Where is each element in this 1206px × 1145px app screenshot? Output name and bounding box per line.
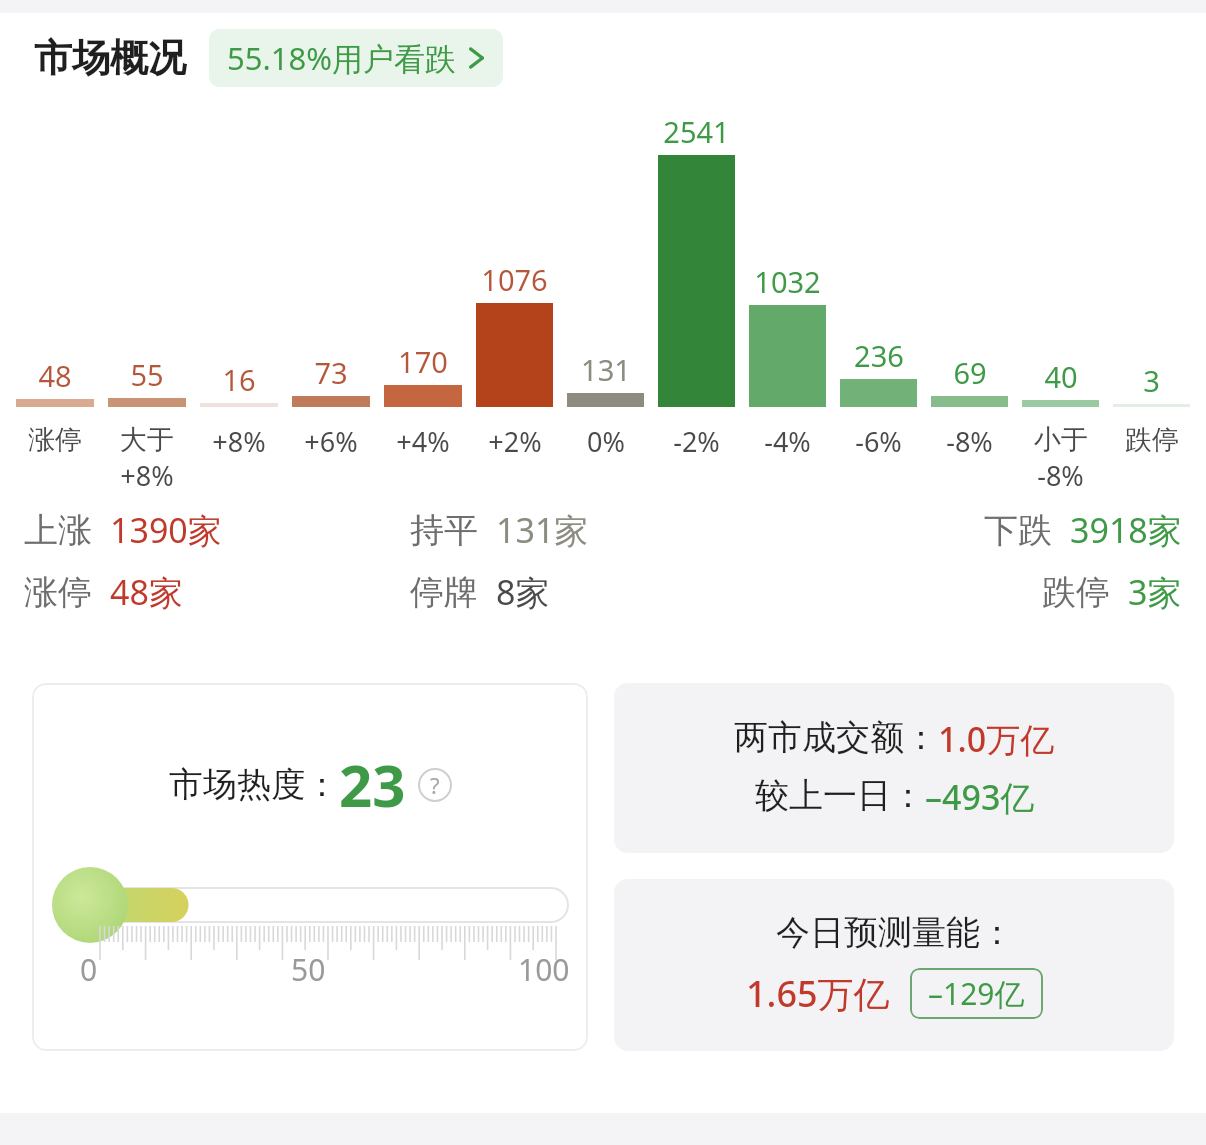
staticText: 170 xyxy=(398,342,448,381)
staticText: -2% xyxy=(673,423,720,460)
staticText: +6% xyxy=(304,423,358,460)
staticText: 16 xyxy=(222,360,256,399)
staticText: 涨停 xyxy=(28,423,82,457)
staticText: 两市成交额： xyxy=(734,716,938,759)
staticText: 大于 xyxy=(120,423,174,457)
staticText: 市场热度： xyxy=(169,763,339,806)
staticText: 0 xyxy=(80,949,98,990)
staticText: 今日预测量能： xyxy=(776,911,1014,954)
staticText: –129亿 xyxy=(928,973,1025,1014)
staticText: 55.18%用户看跌 xyxy=(227,37,456,79)
staticText: +8% xyxy=(120,457,174,491)
staticText: 50 xyxy=(291,949,326,990)
staticText: 较上一日： xyxy=(755,774,925,817)
staticText: 3918家 xyxy=(1070,507,1182,553)
staticText: 跌停 xyxy=(1125,423,1179,457)
staticText: -8% xyxy=(946,423,993,460)
button[interactable]: 两市成交额： xyxy=(614,683,1174,853)
staticText: 131家 xyxy=(496,507,589,553)
staticText: -6% xyxy=(855,423,902,460)
button[interactable]: 55.18%用户看跌 xyxy=(209,29,503,87)
staticText: 48 xyxy=(38,356,72,395)
staticText: 3家 xyxy=(1128,569,1182,615)
staticText: 73 xyxy=(314,353,348,392)
staticText: 8家 xyxy=(496,569,550,615)
staticText: 0% xyxy=(587,423,625,460)
staticText: 1.0万亿 xyxy=(938,716,1055,762)
staticText: +2% xyxy=(488,423,542,460)
staticText: 40 xyxy=(1044,357,1078,396)
button[interactable]: 帮助说明 xyxy=(418,768,452,802)
staticText: 停牌 xyxy=(410,571,478,614)
staticText: 持平 xyxy=(410,509,478,552)
staticText: 下跌 xyxy=(984,509,1052,552)
staticText: 1.65万亿 xyxy=(746,969,890,1018)
staticText: 跌停 xyxy=(1042,571,1110,614)
staticText: 100 xyxy=(518,949,570,990)
staticText: +8% xyxy=(212,423,266,460)
staticText: 1032 xyxy=(754,262,821,301)
staticText: +4% xyxy=(396,423,450,460)
staticText: 小于 xyxy=(1034,423,1088,457)
staticText: -8% xyxy=(1037,457,1084,491)
staticText: 55 xyxy=(130,355,164,394)
staticText: 69 xyxy=(953,353,987,392)
staticText: 1076 xyxy=(481,260,548,299)
staticText: 1390家 xyxy=(110,507,222,553)
staticText: 236 xyxy=(854,336,904,375)
staticText: 3 xyxy=(1143,361,1160,400)
staticText: 48家 xyxy=(110,569,183,615)
staticText: ? xyxy=(430,770,440,800)
staticText: 131 xyxy=(581,350,631,389)
staticText: 上涨 xyxy=(24,509,92,552)
staticText: –493亿 xyxy=(925,774,1035,820)
staticText: 23 xyxy=(339,745,406,824)
staticText: 2541 xyxy=(663,112,730,151)
staticText: 市场概况 xyxy=(34,34,186,82)
button[interactable]: 今日预测量能： xyxy=(614,879,1174,1051)
button[interactable]: 市场热度： xyxy=(32,683,588,1051)
staticText: 涨停 xyxy=(24,571,92,614)
staticText: -4% xyxy=(764,423,811,460)
